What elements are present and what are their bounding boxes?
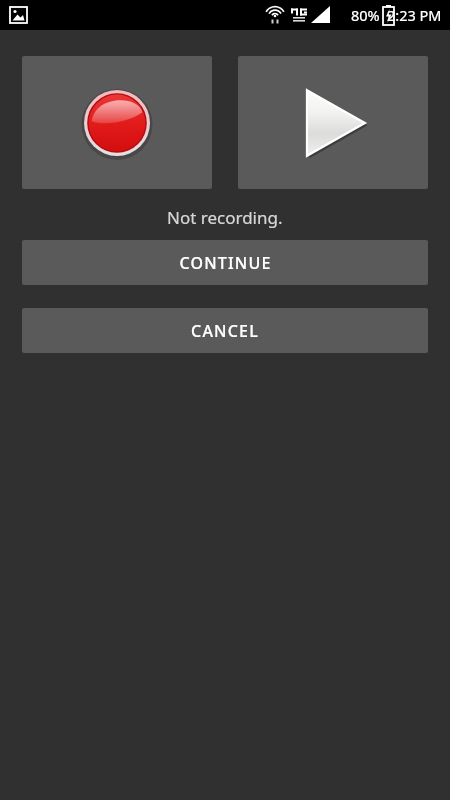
staticText: CANCEL xyxy=(191,320,259,342)
button[interactable]: CONTINUE xyxy=(22,240,428,285)
staticText: 2:23 PM xyxy=(387,5,442,25)
button[interactable]: Record xyxy=(22,56,212,189)
staticText: Not recording. xyxy=(167,206,283,228)
staticText: CONTINUE xyxy=(179,252,272,274)
staticText: 80% xyxy=(351,5,380,25)
button[interactable]: Play xyxy=(238,56,428,189)
button[interactable]: CANCEL xyxy=(22,308,428,353)
